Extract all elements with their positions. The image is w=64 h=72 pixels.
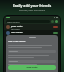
staticText: Tap to invite [11,28,20,30]
staticText: Add a new friend [8,40,56,43]
button[interactable]: Riley Quinn [4,36,60,42]
button[interactable] [8,50,56,53]
button[interactable]: More options [55,20,58,23]
button[interactable]: Send invite [8,65,56,70]
button[interactable] [53,26,58,28]
staticText: Secured, easy and simple [0,9,64,12]
button[interactable]: Alex Morgan [4,30,60,36]
staticText: Easily add your friends [0,3,64,8]
button[interactable]: Search contacts [4,19,60,24]
button[interactable] [8,60,56,63]
staticText: Jamie Carter [11,25,23,28]
staticText: Alex Morgan [11,31,23,34]
staticText: On NeoChat [11,34,20,36]
button[interactable]: Jamie Carter [4,24,60,30]
staticText: Send invite [26,66,38,69]
staticText: Tap to invite [11,40,20,42]
button[interactable] [53,32,58,34]
staticText: Search contacts [7,21,20,23]
button[interactable]: Scan QR code [51,20,54,23]
